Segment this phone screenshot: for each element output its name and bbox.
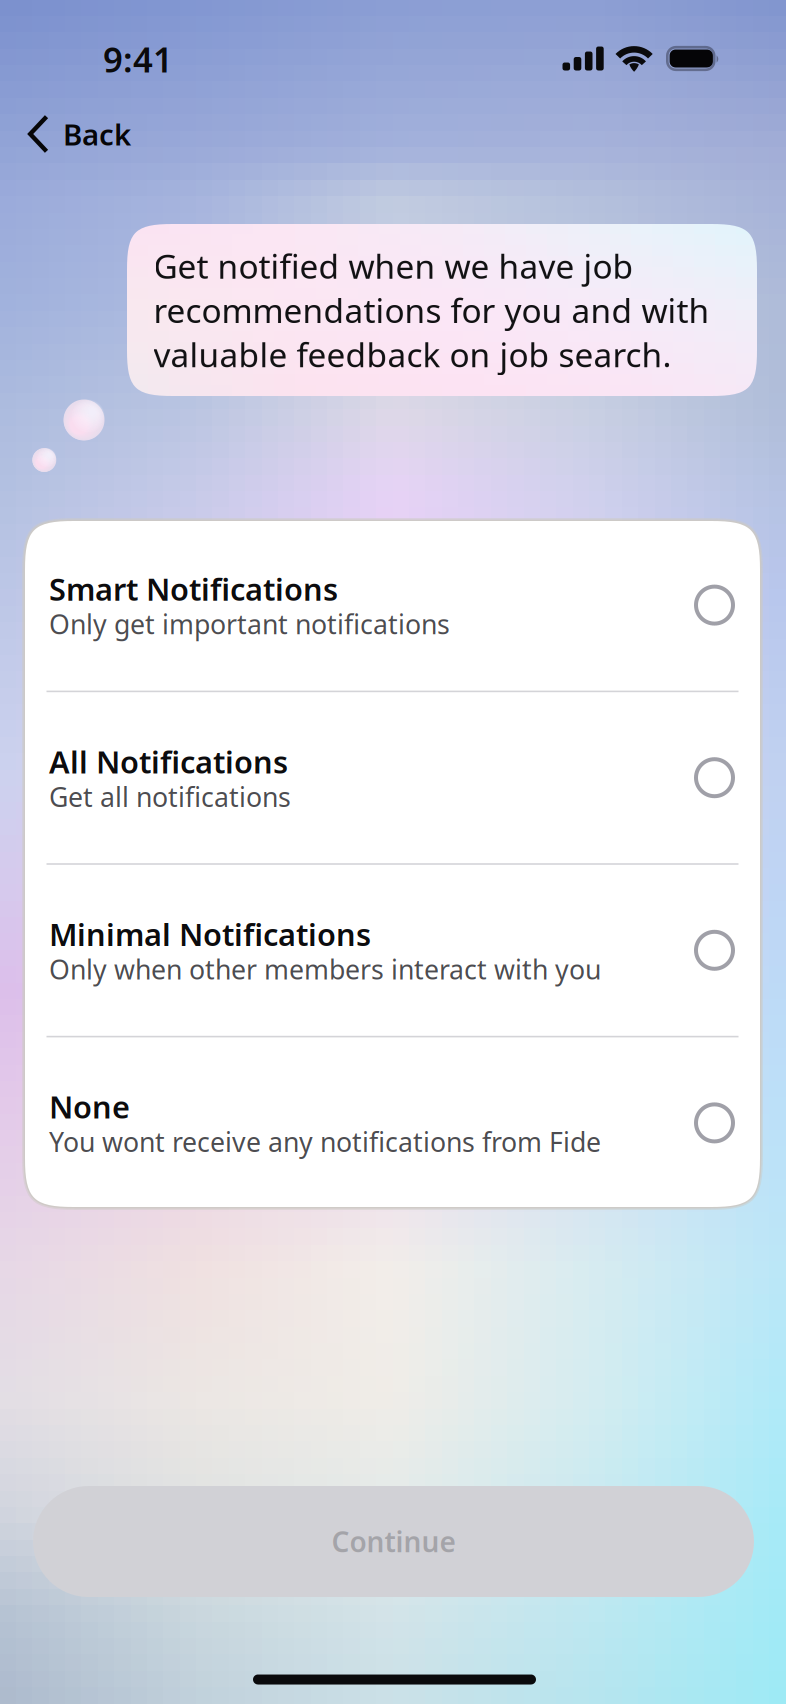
button[interactable]: Back (28, 108, 188, 160)
staticText: Back (63, 114, 131, 153)
button[interactable]: Minimal Notifications (25, 865, 760, 1036)
staticText: Only when other members interact with yo… (49, 951, 601, 987)
staticText: Minimal Notifications (49, 914, 371, 954)
staticText: Get notified when we have job recommenda… (153, 244, 709, 376)
button[interactable]: None (25, 1037, 760, 1208)
staticText: Get all notifications (49, 779, 291, 814)
staticText: 9:41 (103, 36, 173, 82)
button[interactable]: Continue (33, 1486, 754, 1597)
button[interactable]: All Notifications (25, 692, 760, 863)
button[interactable]: Smart Notifications (25, 520, 760, 691)
staticText: Only get important notifications (49, 606, 450, 642)
staticText: Smart Notifications (49, 568, 338, 609)
staticText: None (49, 1086, 130, 1127)
staticText: You wont receive any notifications from … (49, 1124, 601, 1159)
staticText: Continue (331, 1523, 455, 1560)
staticText: All Notifications (49, 741, 288, 782)
